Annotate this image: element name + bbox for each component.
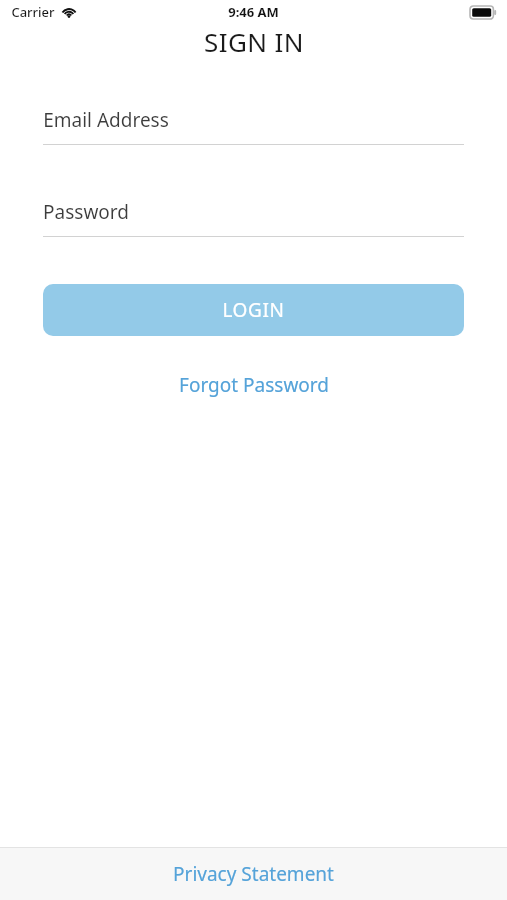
button[interactable]: Password: [43, 199, 464, 237]
staticText: LOGIN: [222, 297, 285, 323]
staticText: Carrier: [11, 3, 55, 21]
button[interactable]: Forgot Password: [161, 367, 347, 403]
staticText: 9:46 AM: [228, 3, 279, 21]
staticText: Privacy Statement: [173, 861, 334, 887]
staticText: Email Address: [43, 107, 169, 133]
other: Battery full: [470, 6, 496, 19]
staticText: Password: [43, 199, 129, 225]
staticText: Forgot Password: [179, 372, 329, 398]
button[interactable]: LOGIN: [43, 284, 464, 336]
button[interactable]: Email Address: [43, 107, 464, 145]
button[interactable]: Privacy Statement: [0, 847, 507, 900]
other: Wi-Fi signal: [61, 6, 77, 18]
staticText: SIGN IN: [204, 24, 304, 58]
